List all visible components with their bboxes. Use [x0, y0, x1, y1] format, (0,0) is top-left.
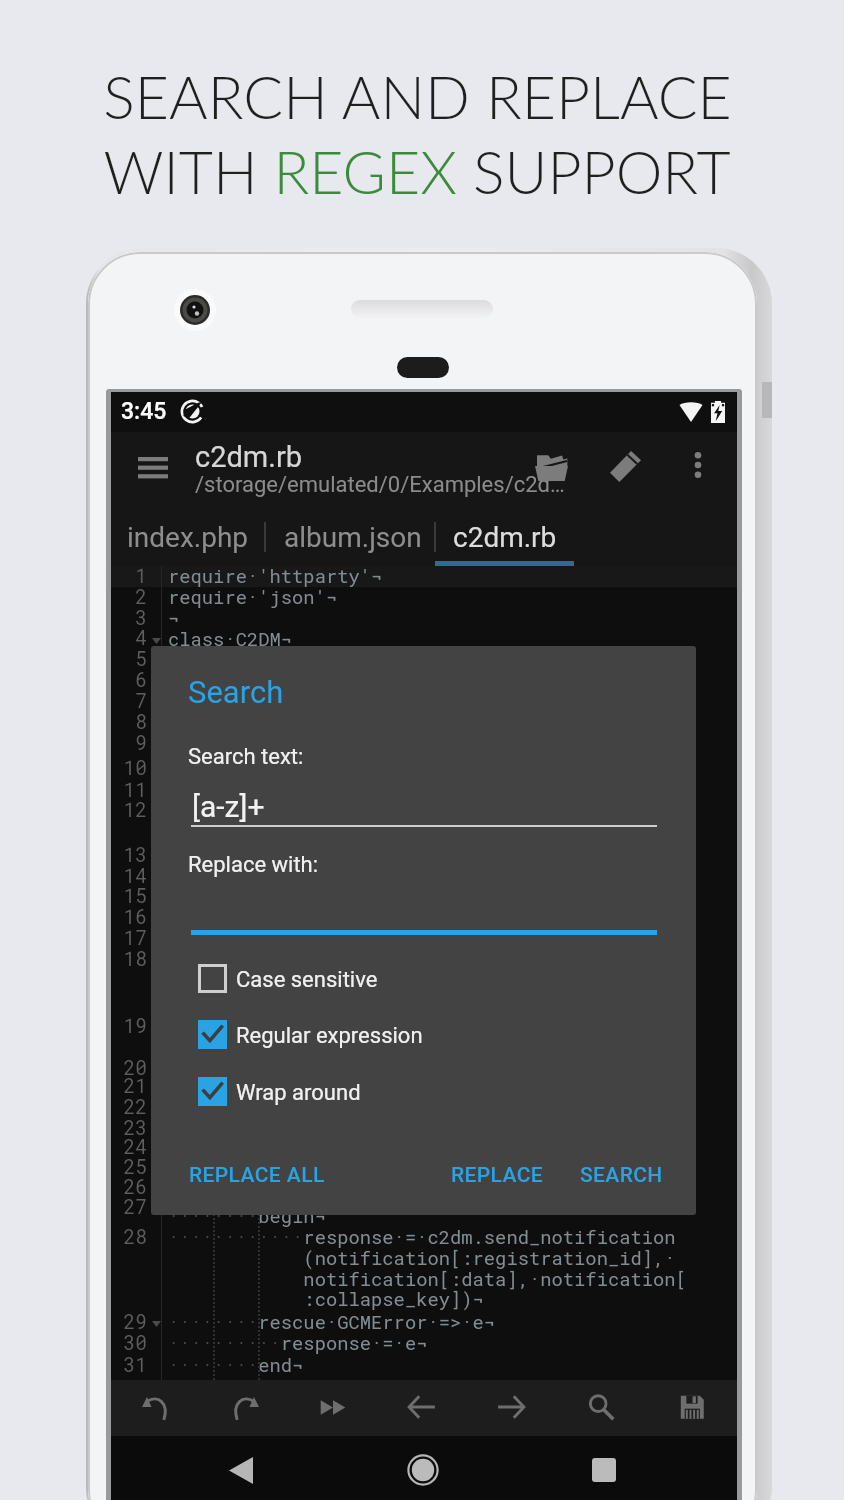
staticText: ¬	[168, 605, 180, 630]
staticText: require·'json'¬	[168, 584, 338, 609]
staticText: 13	[107, 842, 147, 868]
staticText: 30	[107, 1330, 147, 1356]
button[interactable]: Search	[577, 1383, 625, 1431]
staticText: 16	[107, 904, 147, 930]
staticText: 1	[107, 563, 147, 589]
button[interactable]: Save	[668, 1383, 716, 1431]
staticText: [a-z]+	[192, 789, 265, 824]
button[interactable]: Open navigation menu	[114, 438, 176, 500]
staticText: 21	[107, 1073, 147, 1099]
staticText: Search text:	[188, 744, 304, 770]
staticText: Case sensitive	[236, 967, 378, 993]
staticText: 3:45	[121, 398, 167, 425]
staticText: ············response·=·c2dm.send_notific…	[168, 1224, 676, 1249]
staticText: 11	[107, 777, 147, 803]
staticText: ········begin¬	[168, 1203, 326, 1228]
button[interactable]: index.php	[119, 508, 257, 566]
button[interactable]: Regular expression	[191, 1013, 621, 1056]
staticText: Wrap around	[236, 1080, 361, 1106]
staticText: WITH REGEX SUPPORT	[103, 136, 731, 207]
button[interactable]: Back	[215, 1444, 267, 1496]
button[interactable]: Home	[397, 1444, 449, 1496]
staticText: 24	[107, 1134, 147, 1160]
button[interactable]: c2dm.rb	[435, 508, 574, 566]
button[interactable]: Redo	[221, 1383, 269, 1431]
staticText: Regular expression	[236, 1023, 423, 1049]
button[interactable]: Edit	[599, 440, 651, 492]
staticText: 18	[107, 946, 147, 972]
staticText: album.json	[284, 521, 422, 554]
staticText: REPLACE ALL	[189, 1163, 325, 1188]
button[interactable]: Fast forward	[309, 1383, 357, 1431]
staticText: Search	[188, 674, 284, 710]
button[interactable]: Next match	[487, 1383, 535, 1431]
staticText: 9	[107, 730, 147, 756]
staticText: ········end¬	[168, 1352, 304, 1377]
staticText: 4	[107, 625, 147, 651]
button[interactable]: album.json	[275, 508, 431, 566]
staticText: 14	[107, 863, 147, 889]
staticText: 12	[107, 797, 147, 823]
button[interactable]: REPLACE ALL	[175, 1152, 339, 1198]
button[interactable]: SEARCH	[566, 1152, 677, 1198]
staticText: 7	[107, 688, 147, 714]
staticText: REPLACE	[451, 1163, 544, 1188]
button[interactable]: Case sensitive	[191, 957, 621, 1000]
staticText: c2dm.rb	[453, 521, 557, 554]
button[interactable]: More options	[673, 440, 723, 490]
staticText: 2	[107, 584, 147, 610]
button[interactable]: Wrap around	[191, 1070, 621, 1113]
staticText: 8	[107, 709, 147, 735]
staticText: SEARCH AND REPLACE	[103, 61, 732, 132]
staticText: 29	[107, 1309, 147, 1335]
staticText: 25	[107, 1154, 147, 1180]
staticText: c2dm.rb	[195, 440, 303, 474]
staticText: ··········response·=·e¬	[168, 1330, 428, 1355]
staticText: SEARCH	[580, 1163, 663, 1188]
button[interactable]: REPLACE	[437, 1152, 558, 1198]
staticText: 10	[107, 755, 147, 781]
staticText: Replace with:	[188, 852, 319, 878]
staticText: 5	[107, 646, 147, 672]
staticText: 23	[107, 1115, 147, 1141]
staticText: :collapse_key])¬	[168, 1286, 484, 1311]
staticText: (notification[:registration_id],·	[168, 1245, 676, 1270]
staticText: 6	[107, 667, 147, 693]
staticText: 17	[107, 925, 147, 951]
staticText: 3	[107, 605, 147, 631]
staticText: index.php	[127, 521, 249, 554]
staticText: class·C2DM¬	[168, 626, 293, 651]
staticText: notification[:data],·notification[	[168, 1266, 687, 1291]
button[interactable]: Undo	[132, 1383, 180, 1431]
staticText: 28	[107, 1224, 147, 1250]
staticText: 27	[107, 1194, 147, 1220]
staticText: 31	[107, 1352, 147, 1378]
staticText: 22	[107, 1094, 147, 1120]
staticText: require·'httparty'¬	[168, 563, 383, 588]
staticText: 20	[107, 1055, 147, 1081]
button[interactable]: Previous match	[398, 1383, 446, 1431]
button[interactable]: Open file	[527, 440, 579, 492]
button[interactable]: Recent apps	[578, 1444, 630, 1496]
staticText: /storage/emulated/0/Examples/c2d…	[195, 472, 565, 498]
staticText: 15	[107, 883, 147, 909]
staticText: 26	[107, 1174, 147, 1200]
staticText: ········rescue·GCMError·=>·e¬	[168, 1309, 496, 1334]
staticText: 19	[107, 1013, 147, 1039]
